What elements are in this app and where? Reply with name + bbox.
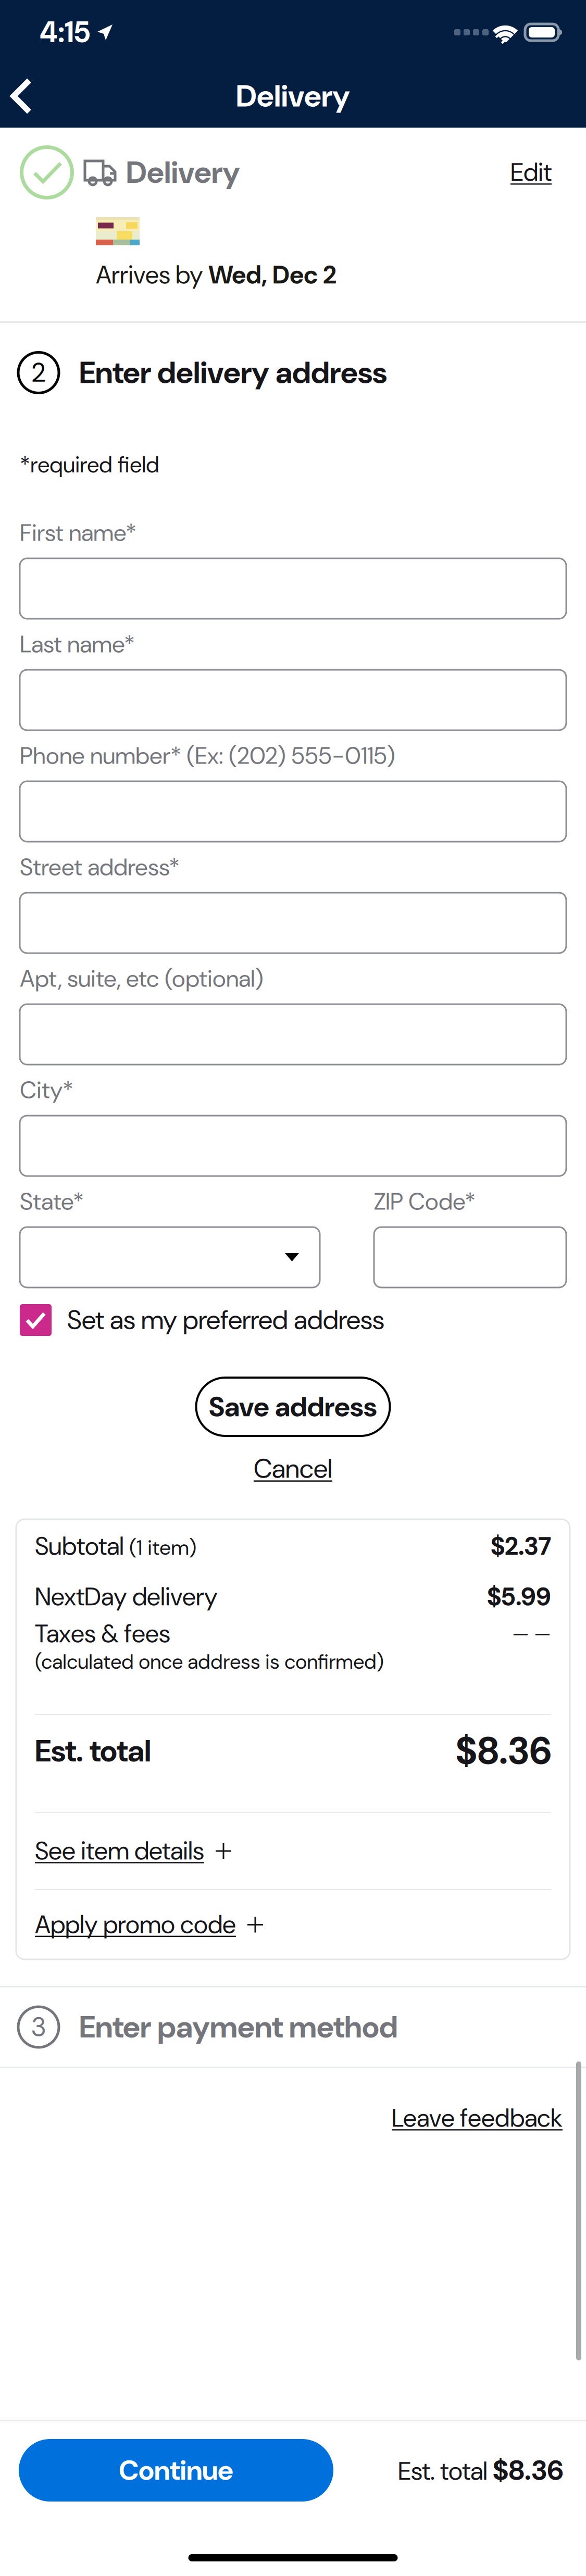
staticText: First name* (20, 517, 136, 548)
staticText: Apt, suite, etc (optional) (20, 963, 264, 994)
staticText: Phone number* (Ex: (202) 555-0115) (20, 740, 395, 771)
staticText: Set as my preferred address (67, 1303, 384, 1337)
staticText: Leave feedback (392, 2102, 563, 2134)
staticText: 2 (32, 355, 45, 390)
staticText: Continue (119, 2452, 233, 2488)
staticText: Delivery (236, 76, 350, 116)
staticText: Save address (209, 1389, 377, 1425)
staticText: 4:15 (40, 13, 90, 51)
button[interactable]: See item details (35, 1813, 551, 1889)
staticText: Arrives by Wed, Dec 2 (96, 259, 336, 291)
button[interactable]: Apply promo code (35, 1890, 551, 1959)
staticText: (calculated once address is confirmed) (35, 1649, 384, 1675)
staticText: Enter payment method (79, 2007, 398, 2047)
staticText: $5.99 (487, 1581, 551, 1613)
button[interactable]: Leave feedback (0, 2068, 586, 2168)
staticText: Est. total $8.36 (398, 2453, 563, 2488)
staticText: Apply promo code (35, 1908, 236, 1941)
staticText: Last name* (20, 629, 135, 660)
button[interactable]: Continue (19, 2439, 333, 2502)
button[interactable]: Save address (196, 1378, 390, 1436)
button[interactable]: Back (0, 65, 56, 128)
staticText: Street address* (20, 852, 180, 883)
staticText: ZIP Code* (374, 1186, 476, 1217)
staticText: NextDay delivery (35, 1581, 218, 1613)
staticText: $2.37 (491, 1530, 551, 1563)
staticText: Est. total (35, 1731, 151, 1771)
button[interactable]: Cancel (254, 1448, 332, 1489)
staticText: Subtotal (1 item) (35, 1530, 196, 1562)
staticText: 3 (31, 2010, 46, 2044)
staticText: *required field (20, 450, 159, 479)
staticText: Delivery (126, 152, 240, 192)
staticText: — — (512, 1621, 551, 1646)
staticText: Cancel (254, 1452, 332, 1486)
staticText: See item details (35, 1835, 204, 1867)
button[interactable]: Edit (503, 145, 559, 200)
button[interactable]: Set as my preferred address (0, 1287, 586, 1353)
staticText: $8.36 (456, 1727, 551, 1775)
staticText: Taxes & fees (35, 1618, 170, 1650)
staticText: Enter delivery address (79, 353, 387, 393)
staticText: State* (20, 1186, 84, 1217)
staticText: City* (20, 1075, 73, 1105)
staticText: Edit (510, 156, 552, 189)
